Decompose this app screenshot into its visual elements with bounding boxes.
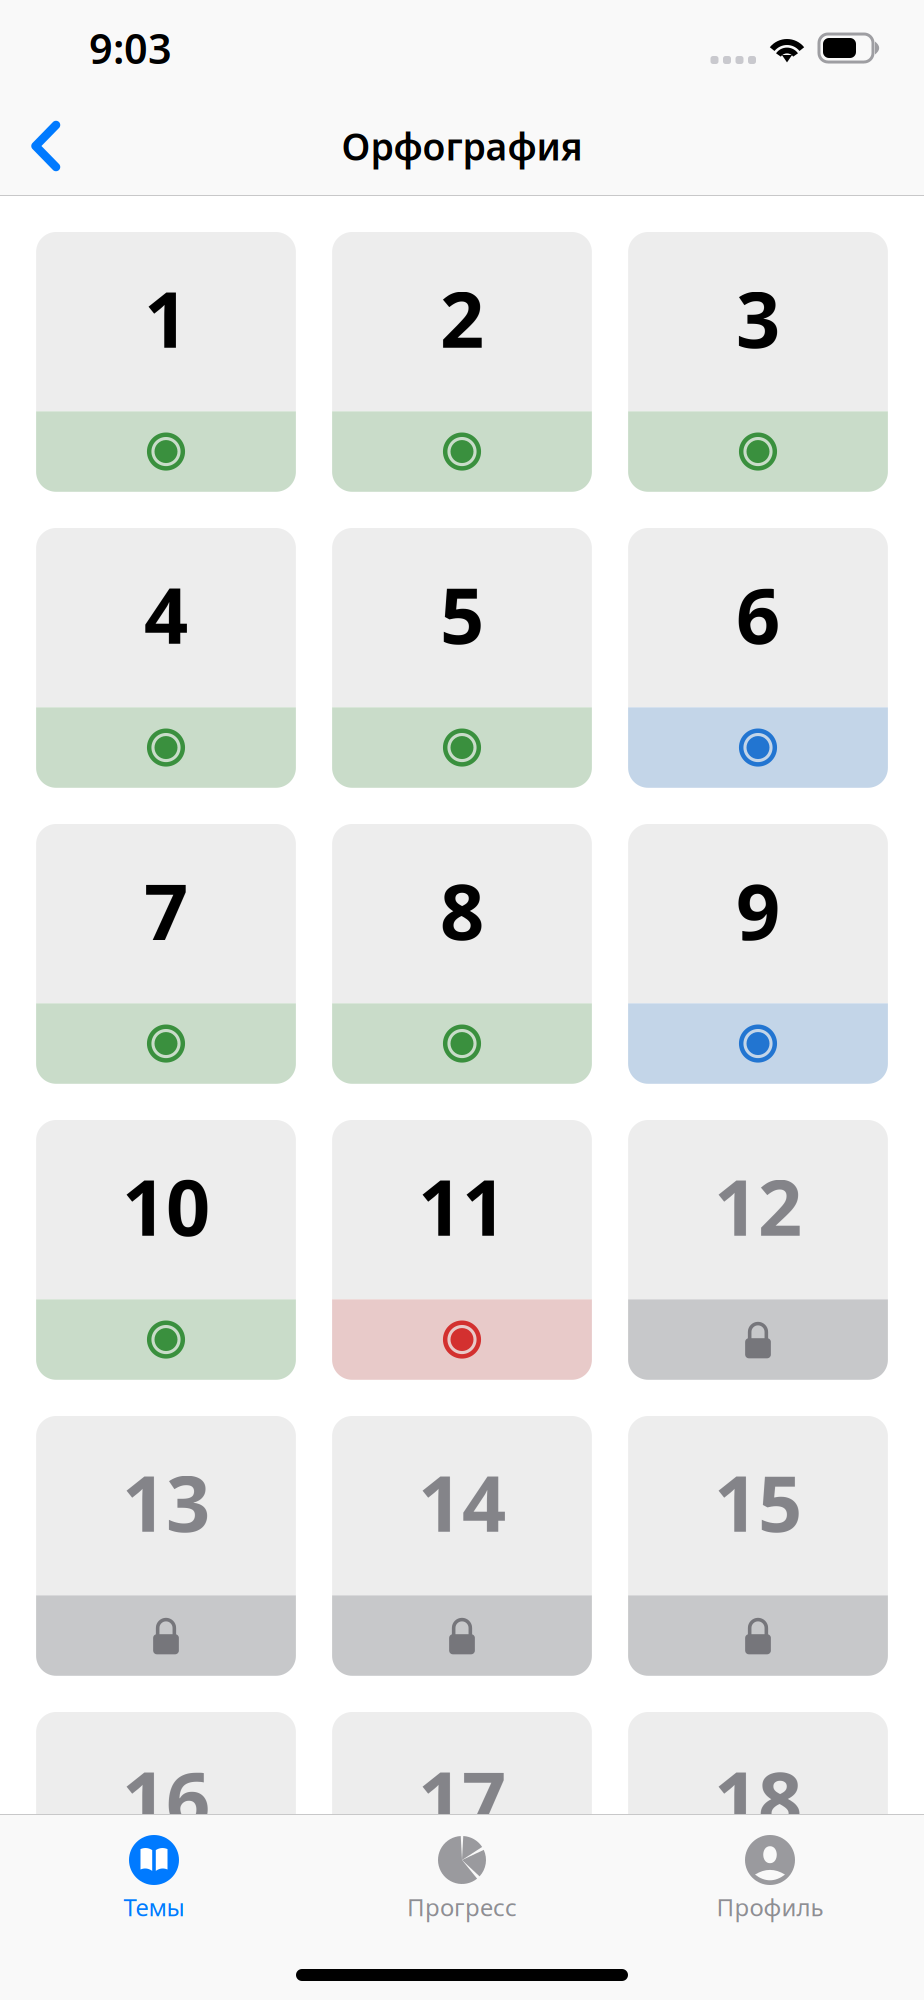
button[interactable]: 17 — [332, 1712, 592, 1972]
button[interactable]: 13 — [36, 1416, 296, 1676]
staticText: 8 — [440, 858, 484, 961]
button[interactable]: 16 — [36, 1712, 296, 1972]
button[interactable]: 3 — [628, 232, 888, 492]
staticText: 17 — [418, 1746, 506, 1849]
staticText: 10 — [122, 1154, 210, 1257]
button[interactable]: 6 — [628, 528, 888, 788]
button[interactable]: 14 — [332, 1416, 592, 1676]
staticText: 12 — [714, 1154, 802, 1257]
staticText: Прогресс — [407, 1891, 517, 1923]
staticText: 18 — [714, 1746, 802, 1849]
button[interactable]: Прогресс — [308, 1831, 616, 1927]
staticText: 9:03 — [89, 21, 172, 75]
staticText: 2 — [440, 266, 484, 369]
staticText: 13 — [122, 1450, 210, 1553]
button[interactable]: 5 — [332, 528, 592, 788]
staticText: 3 — [736, 266, 780, 369]
button[interactable]: 4 — [36, 528, 296, 788]
button[interactable]: 11 — [332, 1120, 592, 1380]
button[interactable]: Темы — [0, 1831, 308, 1927]
staticText: 9 — [736, 858, 780, 961]
button[interactable]: 8 — [332, 824, 592, 1084]
staticText: 6 — [736, 562, 780, 665]
button[interactable]: Back — [14, 101, 78, 191]
staticText: 14 — [418, 1450, 506, 1553]
staticText: 1 — [144, 266, 188, 369]
button[interactable]: Профиль — [616, 1831, 924, 1927]
staticText: 5 — [440, 562, 484, 665]
button[interactable]: 18 — [628, 1712, 888, 1972]
staticText: 7 — [144, 858, 188, 961]
staticText: Темы — [123, 1891, 184, 1923]
button[interactable]: 1 — [36, 232, 296, 492]
button[interactable]: 15 — [628, 1416, 888, 1676]
button[interactable]: 2 — [332, 232, 592, 492]
button[interactable]: 7 — [36, 824, 296, 1084]
staticText: Профиль — [716, 1891, 823, 1923]
button[interactable]: 10 — [36, 1120, 296, 1380]
staticText: 16 — [122, 1746, 210, 1849]
staticText: Орфография — [341, 121, 582, 171]
button[interactable]: 9 — [628, 824, 888, 1084]
staticText: 4 — [144, 562, 188, 665]
button[interactable]: 12 — [628, 1120, 888, 1380]
staticText: 11 — [418, 1154, 506, 1257]
staticText: 15 — [714, 1450, 802, 1553]
